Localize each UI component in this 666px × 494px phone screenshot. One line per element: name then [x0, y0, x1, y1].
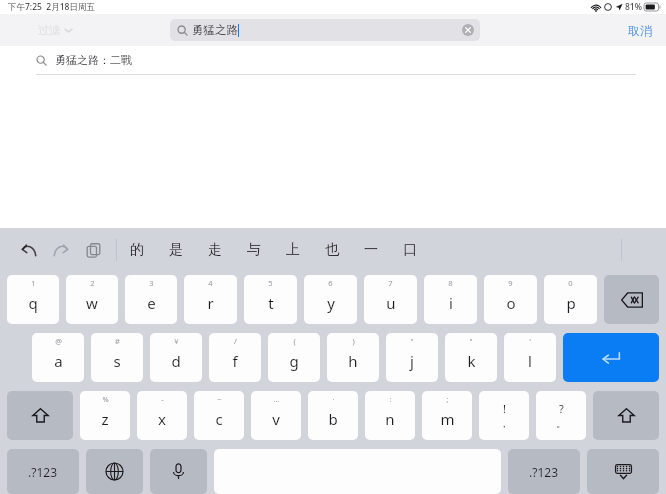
staticText: c — [215, 409, 223, 429]
staticText: y — [327, 293, 335, 313]
button[interactable]: .?123 — [7, 449, 79, 494]
staticText: ? — [559, 401, 564, 416]
staticText: j — [410, 351, 414, 371]
staticText: ( — [293, 336, 296, 346]
staticText: 4 — [208, 278, 213, 288]
staticText: 6 — [328, 278, 333, 288]
staticText: - — [161, 394, 164, 404]
button[interactable]: Switch keyboard — [86, 449, 143, 494]
button[interactable]: 9 — [484, 275, 537, 324]
button[interactable]: Dictation — [150, 449, 207, 494]
staticText: 下午7:25 2月18日周五 — [8, 1, 95, 13]
staticText: k — [467, 351, 476, 371]
staticText: t — [268, 293, 274, 313]
button[interactable]: 一 — [351, 228, 390, 272]
button[interactable]: 4 — [184, 275, 237, 324]
staticText: m — [440, 409, 455, 429]
button[interactable]: # — [91, 333, 143, 382]
button[interactable]: 6 — [304, 275, 357, 324]
staticText: 8 — [448, 278, 453, 288]
button[interactable]: 3 — [125, 275, 177, 324]
button[interactable]: Delete — [604, 275, 659, 324]
button[interactable]: @ — [32, 333, 84, 382]
button[interactable]: Undo — [18, 239, 40, 261]
button[interactable]: 口 — [390, 228, 429, 272]
staticText: / — [234, 336, 237, 346]
button[interactable]: 勇猛之路：二戰 — [0, 46, 666, 74]
staticText: u — [386, 293, 396, 313]
staticText: ) — [352, 336, 355, 346]
staticText: " — [469, 336, 473, 346]
staticText: 走 — [208, 241, 222, 259]
staticText: # — [115, 336, 120, 346]
staticText: i — [449, 293, 453, 313]
staticText: a — [54, 351, 63, 371]
button[interactable]: ( — [268, 333, 320, 382]
button[interactable]: 7 — [364, 275, 417, 324]
staticText: ， — [499, 417, 509, 430]
button[interactable]: Paste — [82, 239, 104, 261]
button[interactable]: ? — [536, 391, 586, 440]
button[interactable]: " — [386, 333, 438, 382]
staticText: 也 — [325, 241, 339, 259]
button[interactable]: 5 — [244, 275, 297, 324]
button[interactable]: ; — [422, 391, 472, 440]
button[interactable]: Return — [563, 333, 659, 382]
staticText: v — [272, 409, 280, 429]
button[interactable]: ) — [327, 333, 379, 382]
staticText: ; — [446, 394, 449, 404]
button[interactable]: 与 — [234, 228, 273, 272]
staticText: f — [232, 351, 238, 371]
staticText: 勇猛之路：二戰 — [55, 53, 132, 67]
staticText: 与 — [247, 241, 261, 259]
button[interactable]: Redo — [50, 239, 72, 261]
button[interactable]: 的 — [117, 228, 156, 272]
staticText: 2 — [90, 278, 95, 288]
staticText: ' — [529, 336, 531, 346]
staticText: n — [385, 409, 395, 429]
staticText: 是 — [169, 241, 183, 259]
staticText: p — [566, 293, 576, 313]
staticText: @ — [55, 336, 62, 346]
button[interactable]: - — [137, 391, 187, 440]
button[interactable]: 是 — [156, 228, 195, 272]
button[interactable]: : — [365, 391, 415, 440]
button[interactable]: ' — [504, 333, 556, 382]
button[interactable]: 2 — [66, 275, 118, 324]
staticText: " — [410, 336, 414, 346]
button[interactable]: Hide keyboard — [587, 449, 659, 494]
button[interactable]: 8 — [424, 275, 477, 324]
staticText: 勇猛之路 — [192, 23, 238, 37]
button[interactable]: ! — [479, 391, 529, 440]
button[interactable]: 取消 — [628, 14, 652, 46]
button[interactable]: ... — [251, 391, 301, 440]
button[interactable]: .?123 — [508, 449, 580, 494]
button[interactable]: / — [209, 333, 261, 382]
button[interactable]: ¥ — [150, 333, 202, 382]
staticText: q — [28, 293, 38, 313]
button[interactable]: 勇猛之路 — [170, 19, 480, 41]
staticText: 9 — [508, 278, 513, 288]
staticText: 过滤 — [38, 23, 60, 37]
button[interactable]: % — [80, 391, 130, 440]
button[interactable]: 0 — [544, 275, 597, 324]
button[interactable]: Shift — [7, 391, 73, 440]
staticText: 口 — [403, 241, 417, 259]
button[interactable]: 走 — [195, 228, 234, 272]
staticText: 3 — [149, 278, 154, 288]
staticText: 上 — [286, 241, 300, 259]
staticText: o — [506, 293, 516, 313]
button[interactable]: 上 — [273, 228, 312, 272]
button[interactable]: ~ — [194, 391, 244, 440]
button[interactable]: 也 — [312, 228, 351, 272]
button[interactable]: · — [308, 391, 358, 440]
button[interactable]: 1 — [7, 275, 59, 324]
button[interactable]: " — [445, 333, 497, 382]
staticText: ~ — [217, 394, 222, 404]
button[interactable]: Shift — [593, 391, 659, 440]
staticText: ... — [273, 394, 280, 404]
staticText: h — [348, 351, 358, 371]
staticText: 。 — [556, 417, 566, 430]
